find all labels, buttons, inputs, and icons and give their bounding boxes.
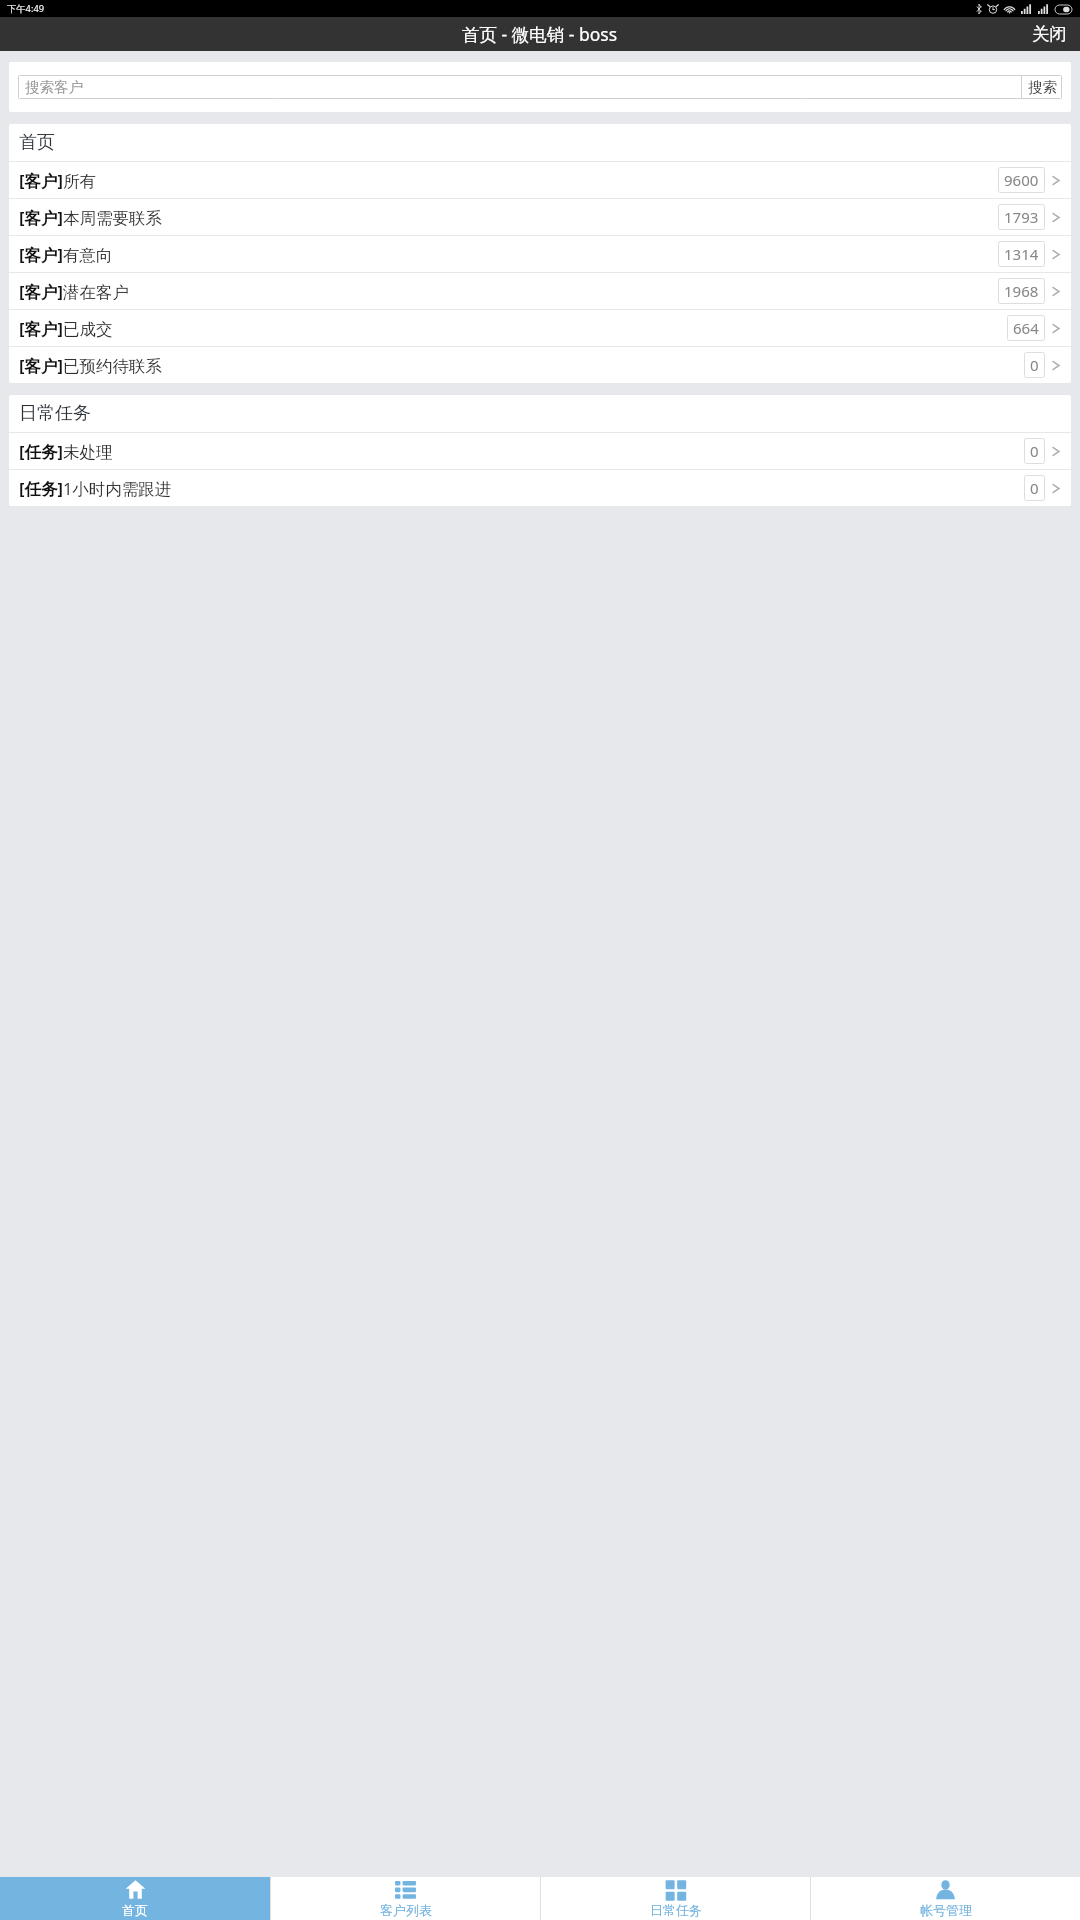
staticText: 首页 bbox=[122, 1902, 148, 1918]
staticText: 9600 bbox=[1004, 170, 1039, 190]
staticText: [客户]潜在客户 bbox=[19, 280, 129, 303]
staticText: 首页 bbox=[19, 131, 55, 154]
button[interactable]: [任务]未处理 bbox=[9, 433, 1071, 469]
button[interactable]: [客户]有意向 bbox=[9, 236, 1071, 272]
staticText: 首页 - 微电销 - boss bbox=[462, 22, 618, 46]
staticText: 664 bbox=[1013, 318, 1039, 338]
staticText: [客户]已预约待联系 bbox=[19, 354, 162, 377]
button[interactable]: 关闭 bbox=[1019, 17, 1080, 51]
staticText: 搜索客户 bbox=[25, 78, 83, 96]
staticText: [任务]未处理 bbox=[19, 440, 113, 463]
staticText: 0 bbox=[1030, 478, 1039, 498]
staticText: 1314 bbox=[1004, 244, 1039, 264]
staticText: 客户列表 bbox=[380, 1902, 432, 1918]
staticText: 1793 bbox=[1004, 207, 1039, 227]
staticText: [客户]本周需要联系 bbox=[19, 206, 162, 229]
staticText: [客户]有意向 bbox=[19, 243, 113, 266]
staticText: 日常任务 bbox=[650, 1902, 702, 1918]
button[interactable]: 搜索客户 bbox=[18, 75, 1021, 99]
button[interactable]: 首页 bbox=[0, 1877, 270, 1920]
staticText: 0 bbox=[1030, 441, 1039, 461]
staticText: 下午4:49 bbox=[7, 2, 45, 15]
button[interactable]: [客户]潜在客户 bbox=[9, 273, 1071, 309]
button[interactable]: [客户]已成交 bbox=[9, 310, 1071, 346]
button[interactable]: [客户]所有 bbox=[9, 162, 1071, 198]
button[interactable]: [客户]本周需要联系 bbox=[9, 199, 1071, 235]
button[interactable]: 帐号管理 bbox=[811, 1877, 1080, 1920]
staticText: [客户]已成交 bbox=[19, 317, 113, 340]
staticText: 0 bbox=[1030, 355, 1039, 375]
staticText: 关闭 bbox=[1032, 23, 1067, 45]
button[interactable]: 日常任务 bbox=[541, 1877, 810, 1920]
staticText: 搜索 bbox=[1028, 78, 1057, 96]
staticText: [任务]1小时内需跟进 bbox=[19, 477, 172, 500]
staticText: 1968 bbox=[1004, 281, 1039, 301]
staticText: 帐号管理 bbox=[920, 1902, 972, 1918]
button[interactable]: 搜索 bbox=[1022, 75, 1062, 99]
button[interactable]: [任务]1小时内需跟进 bbox=[9, 470, 1071, 506]
staticText: [客户]所有 bbox=[19, 169, 96, 192]
staticText: 日常任务 bbox=[19, 402, 91, 425]
button[interactable]: [客户]已预约待联系 bbox=[9, 347, 1071, 383]
button[interactable]: 客户列表 bbox=[271, 1877, 540, 1920]
